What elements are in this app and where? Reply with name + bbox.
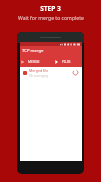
button[interactable]: Merged file <box>20 67 82 78</box>
staticText: Wait for merge to complete <box>18 15 84 22</box>
staticText: MERGE <box>28 59 40 64</box>
staticText: TCP merge <box>22 48 44 54</box>
button[interactable]: MERGE <box>20 56 51 67</box>
staticText: STEP 3 <box>40 4 61 13</box>
staticText: Merged file <box>29 68 49 73</box>
staticText: file is merging <box>29 74 48 78</box>
button[interactable]: FILES <box>51 56 82 67</box>
staticText: FILES <box>62 59 71 64</box>
